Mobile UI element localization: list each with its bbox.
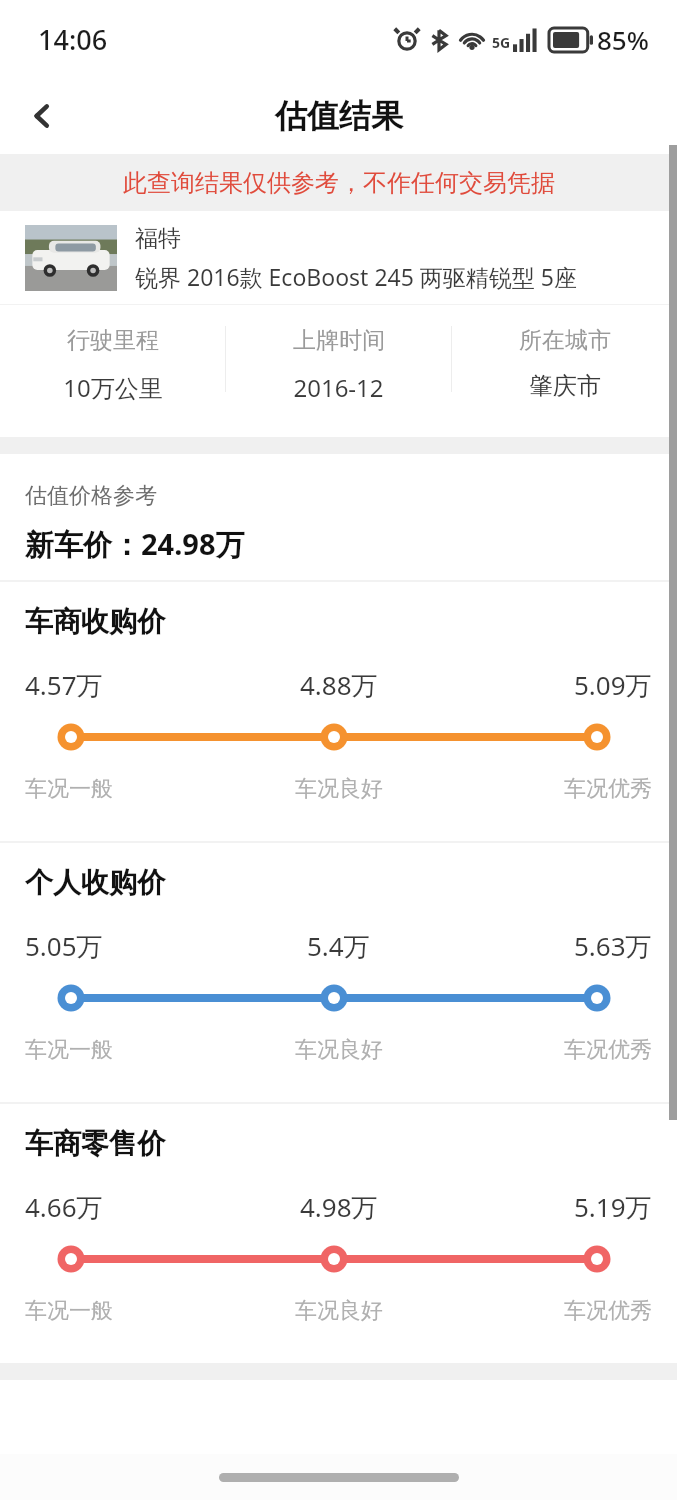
staticText: 锐界 2016款 EcoBoost 245 两驱精锐型 5座 <box>135 261 577 292</box>
staticText: 14:06 <box>38 21 108 58</box>
staticText: 5G <box>492 33 511 52</box>
staticText: 车况一般 <box>25 1036 113 1064</box>
staticText: 5.05万 <box>25 928 103 964</box>
staticText: 5.4万 <box>307 928 370 964</box>
staticText: 肇庆市 <box>529 371 601 401</box>
staticText: 4.88万 <box>300 667 378 703</box>
staticText: 估值结果 <box>275 96 403 136</box>
staticText: 车况良好 <box>295 1036 383 1064</box>
staticText: 4.57万 <box>25 667 103 703</box>
staticText: 个人收购价 <box>25 865 165 900</box>
staticText: 5.63万 <box>574 928 652 964</box>
staticText: 所在城市 <box>519 326 611 355</box>
staticText: 新车价：24.98万 <box>25 524 245 564</box>
staticText: 4.98万 <box>300 1189 378 1225</box>
staticText: 2016-12 <box>293 371 384 404</box>
button[interactable]: Back <box>0 78 84 154</box>
staticText: 车况良好 <box>295 1297 383 1325</box>
staticText: 车况优秀 <box>564 1297 652 1325</box>
staticText: 10万公里 <box>63 371 163 404</box>
staticText: 5.09万 <box>574 667 652 703</box>
staticText: 此查询结果仅供参考，不作任何交易凭据 <box>123 168 555 198</box>
staticText: 车况优秀 <box>564 775 652 803</box>
staticText: 车况一般 <box>25 775 113 803</box>
staticText: 4.66万 <box>25 1189 103 1225</box>
staticText: 车况一般 <box>25 1297 113 1325</box>
staticText: 行驶里程 <box>67 326 159 355</box>
staticText: 85% <box>597 22 649 57</box>
staticText: 车况良好 <box>295 775 383 803</box>
staticText: 估值价格参考 <box>25 482 157 510</box>
staticText: 车商零售价 <box>25 1126 165 1161</box>
staticText: 上牌时间 <box>293 326 385 355</box>
staticText: 车商收购价 <box>25 604 165 639</box>
staticText: 福特 <box>135 224 181 253</box>
staticText: 5.19万 <box>574 1189 652 1225</box>
staticText: 车况优秀 <box>564 1036 652 1064</box>
